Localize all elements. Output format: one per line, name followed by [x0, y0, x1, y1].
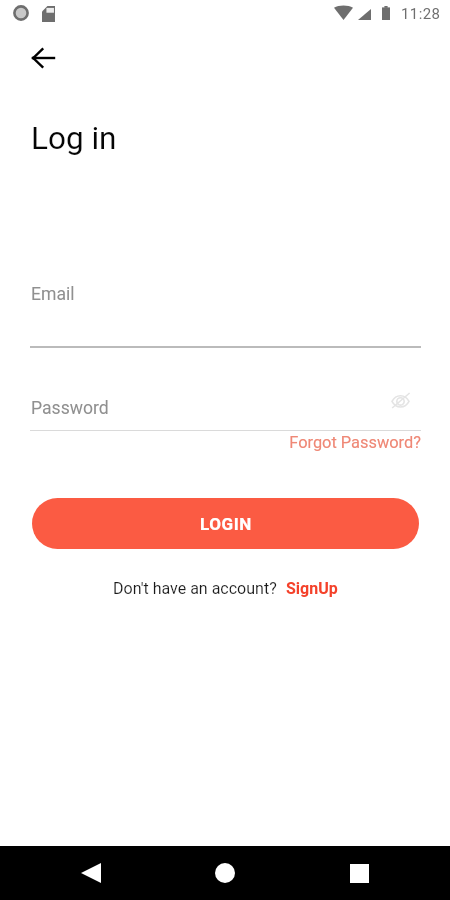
button[interactable]: Back	[71, 853, 111, 893]
staticText: Log in	[31, 120, 117, 157]
button[interactable]: LOGIN	[32, 498, 419, 549]
button[interactable]: Back	[22, 37, 63, 78]
button[interactable]: Recent apps	[339, 853, 379, 893]
staticText: LOGIN	[200, 514, 252, 534]
staticText: Password	[31, 398, 109, 419]
staticText: 11:28	[401, 5, 441, 23]
button[interactable]: Show password	[384, 384, 416, 416]
button[interactable]: Forgot Password?	[241, 433, 421, 452]
staticText: Forgot Password?	[241, 433, 421, 452]
staticText: Don't have an account?	[113, 579, 277, 598]
button[interactable]: Home	[205, 853, 245, 893]
button[interactable]: SignUp	[286, 579, 338, 598]
staticText: Email	[31, 284, 75, 305]
